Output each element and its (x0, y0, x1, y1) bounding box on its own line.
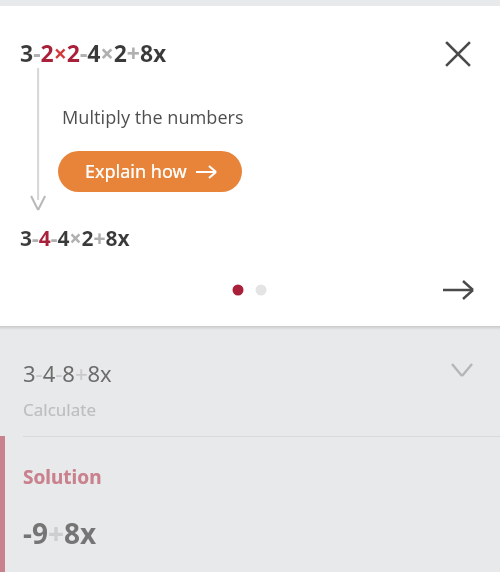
staticText: Calculate (23, 398, 96, 421)
button[interactable]: 3-4-8+8x (0, 326, 500, 436)
staticText: Multiply the numbers (62, 105, 244, 130)
button[interactable]: Close (434, 30, 482, 78)
staticText: Solution (23, 464, 102, 490)
staticText: 3-4-4×2+8x (20, 224, 130, 253)
staticText: 3-4-8+8x (23, 358, 112, 388)
button[interactable]: Explain how (58, 151, 242, 192)
button[interactable]: Next (434, 266, 482, 314)
staticText: -9+8x (23, 514, 97, 552)
staticText: 3-2×2-4×2+8x (20, 37, 167, 68)
staticText: Explain how (85, 159, 187, 184)
